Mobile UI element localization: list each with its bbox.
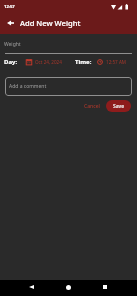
staticText: Save (113, 103, 125, 110)
button[interactable]: 12:57 AM (97, 59, 127, 65)
button[interactable]: Back (0, 12, 20, 33)
staticText: Cancel (84, 103, 100, 110)
staticText: 12:57 AM (106, 59, 127, 65)
staticText: Weight (4, 41, 21, 48)
staticText: Oct 24, 2024 (35, 59, 62, 65)
button[interactable]: Recent apps (91, 280, 118, 296)
button[interactable]: Home (55, 280, 82, 296)
button[interactable]: Add a comment (5, 77, 132, 96)
button[interactable]: Oct 24, 2024 (26, 59, 62, 65)
button[interactable]: Cancel (81, 100, 103, 112)
button[interactable]: Save (106, 100, 131, 112)
staticText: 12:57 (4, 4, 15, 10)
button[interactable]: Back (18, 280, 45, 296)
staticText: Add a comment (9, 83, 47, 90)
staticText: Time: (75, 58, 92, 66)
staticText: Add New Weight (20, 18, 81, 28)
staticText: Day: (4, 58, 18, 66)
